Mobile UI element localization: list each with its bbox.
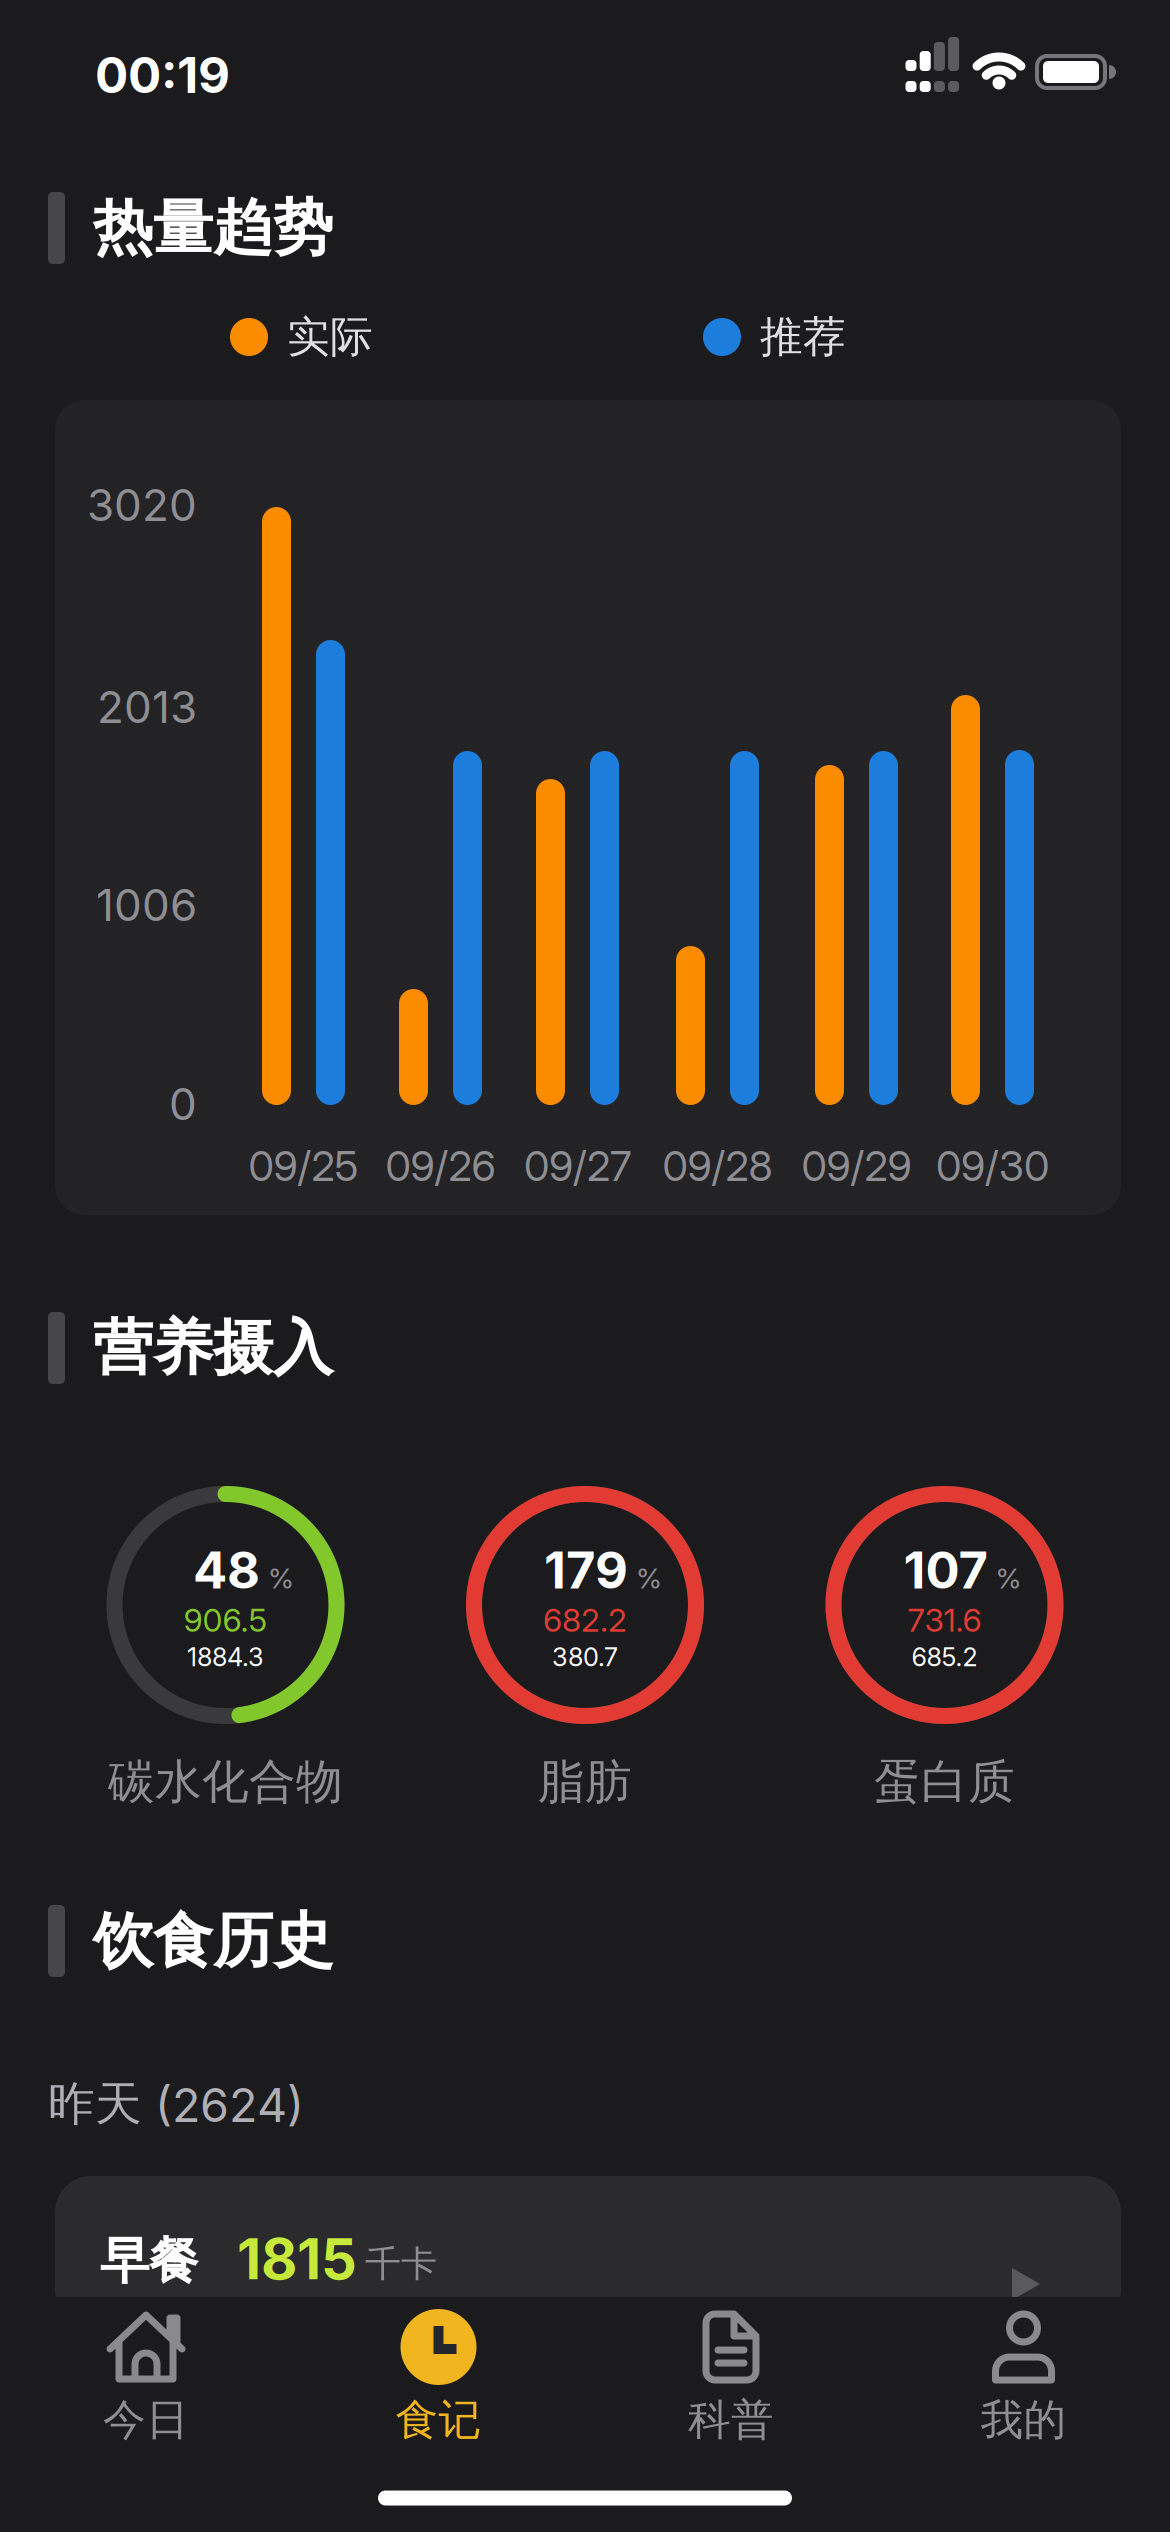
staticText: 实际	[287, 311, 373, 363]
staticText: 685.2	[911, 1642, 977, 1672]
staticText: 早餐	[100, 2231, 198, 2291]
staticText: 00:19	[95, 46, 230, 104]
staticText: 营养摄入	[93, 1311, 333, 1385]
staticText: 推荐	[760, 311, 846, 363]
staticText: 我的	[980, 2394, 1066, 2446]
button[interactable]: 科普	[606, 2295, 856, 2475]
staticText: 2013	[97, 681, 197, 733]
staticText: 热量趋势	[93, 191, 333, 265]
button[interactable]: 我的	[898, 2295, 1148, 2475]
staticText: 饮食历史	[93, 1904, 333, 1978]
staticText: 0	[169, 1078, 197, 1130]
staticText: 09/25	[248, 1142, 358, 1190]
staticText: 蛋白质	[874, 1753, 1015, 1811]
staticText: 48	[193, 1540, 260, 1600]
staticText: 1884.3	[187, 1642, 264, 1672]
staticText: 食记	[395, 2394, 481, 2446]
button[interactable]: 今日	[21, 2295, 271, 2475]
staticText: 09/30	[936, 1142, 1049, 1190]
staticText: 科普	[688, 2394, 774, 2446]
button[interactable]: 食记	[313, 2295, 563, 2475]
staticText: %	[636, 1562, 662, 1595]
staticText: 731.6	[907, 1601, 981, 1639]
staticText: 千卡	[365, 2242, 437, 2286]
staticText: %	[995, 1562, 1021, 1595]
staticText: 1815	[237, 2226, 357, 2292]
staticText: 179	[544, 1540, 628, 1600]
button[interactable]: 早餐	[55, 2176, 1121, 2326]
staticText: 09/29	[801, 1142, 911, 1190]
staticText: 906.5	[183, 1601, 267, 1639]
staticText: %	[268, 1562, 294, 1595]
staticText: 今日	[103, 2394, 189, 2446]
staticText: 脂肪	[538, 1753, 632, 1811]
staticText: 碳水化合物	[108, 1753, 343, 1811]
staticText: 昨天 (2624)	[48, 2075, 304, 2133]
staticText: 682.2	[543, 1601, 627, 1639]
staticText: 1006	[96, 879, 197, 931]
staticText: 380.7	[552, 1642, 618, 1672]
staticText: 09/27	[524, 1142, 631, 1190]
staticText: 09/28	[662, 1142, 772, 1190]
staticText: 107	[903, 1540, 987, 1600]
staticText: 09/26	[385, 1142, 495, 1190]
staticText: 3020	[87, 479, 197, 531]
